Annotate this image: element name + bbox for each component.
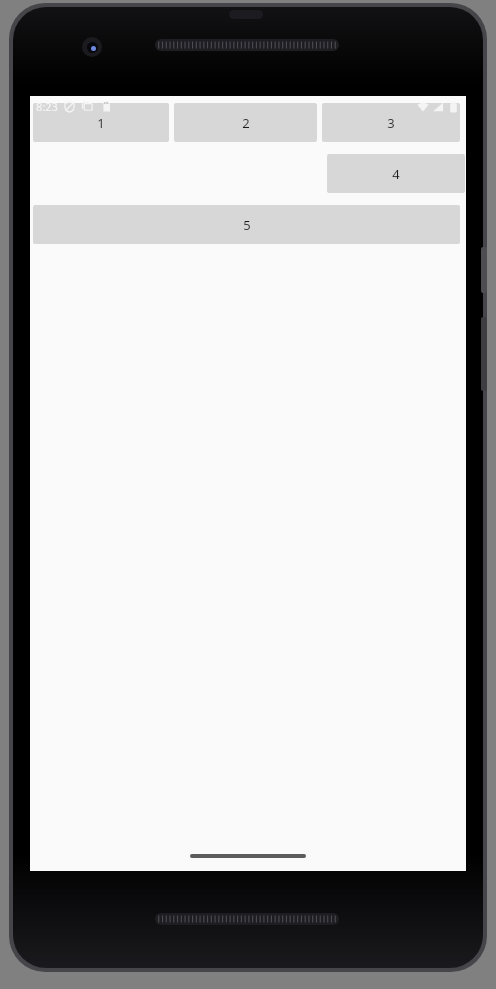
other: Wi-Fi [417, 101, 429, 113]
button[interactable]: 1 [33, 103, 169, 142]
button[interactable]: 5 [33, 205, 460, 244]
other: Signal [432, 101, 444, 113]
staticText: 5 [243, 216, 251, 234]
staticText: 1 [97, 114, 105, 132]
button[interactable]: 3 [322, 103, 460, 142]
other: VPN [64, 101, 75, 112]
other: SD card [101, 101, 112, 112]
staticText: 2 [242, 114, 250, 132]
staticText: 8:23 [36, 99, 58, 114]
staticText: 3 [387, 114, 395, 132]
other: Battery [448, 102, 459, 113]
button[interactable]: 4 [327, 154, 465, 193]
staticText: 4 [392, 165, 400, 183]
button[interactable]: 2 [174, 103, 317, 142]
other: Cast [82, 101, 93, 112]
